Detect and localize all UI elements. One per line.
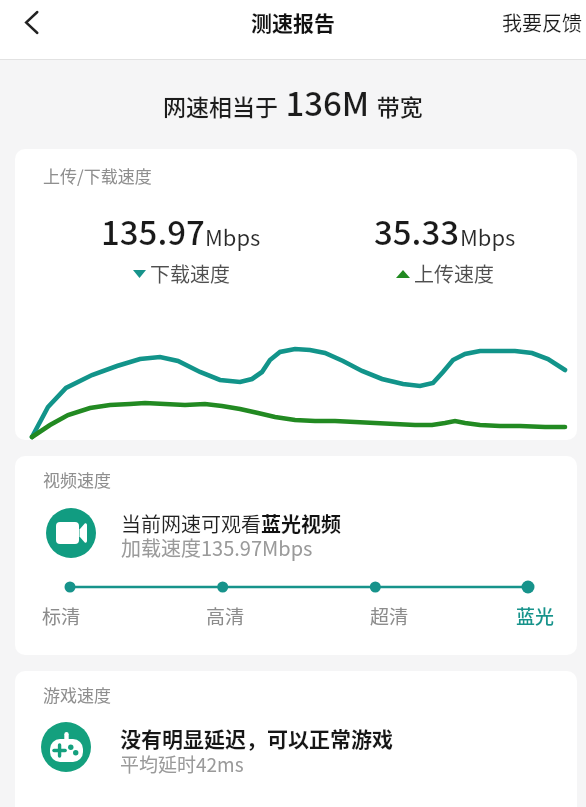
staticText: 蓝光 <box>516 602 555 630</box>
staticText: 视频速度 <box>43 467 111 492</box>
staticText: 超清 <box>370 602 409 630</box>
staticText: Mbps <box>205 220 261 252</box>
button[interactable]: 我要反馈 <box>502 8 582 37</box>
staticText: 下载速度 <box>150 259 230 288</box>
staticText: 上传速度 <box>414 259 494 288</box>
staticText: 加载速度135.97Mbps <box>121 533 313 562</box>
button[interactable]: 蓝光 <box>495 602 575 630</box>
staticText: 当前网速可观看蓝光视频 <box>121 509 341 538</box>
staticText: 平均延时42ms <box>120 750 244 778</box>
staticText: 高清 <box>206 602 245 630</box>
button[interactable]: 标清 <box>21 602 101 630</box>
staticText: Mbps <box>460 220 516 252</box>
staticText: 135.97 <box>101 207 205 255</box>
staticText: 标清 <box>42 602 81 630</box>
staticText: 测速报告 <box>251 7 335 37</box>
staticText: 游戏速度 <box>43 682 111 707</box>
staticText: 我要反馈 <box>502 8 582 37</box>
staticText: 没有明显延迟，可以正常游戏 <box>120 723 393 753</box>
staticText: 35.33 <box>374 207 460 255</box>
staticText: 上传/下载速度 <box>43 163 152 188</box>
staticText: 网速相当于 136M 带宽 <box>163 78 423 126</box>
button[interactable]: 超清 <box>349 602 429 630</box>
button[interactable] <box>18 5 46 39</box>
button[interactable]: 高清 <box>185 602 265 630</box>
